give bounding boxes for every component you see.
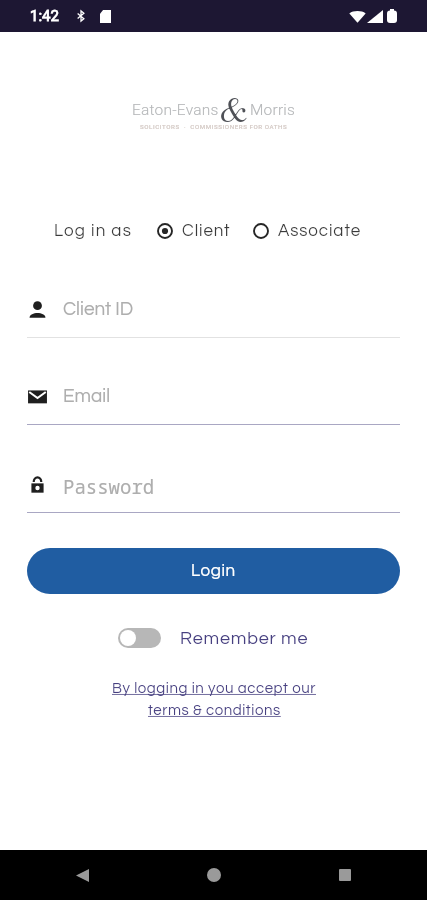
- button[interactable]: Recent apps: [323, 853, 367, 897]
- staticText: Client: [182, 222, 231, 240]
- staticText: Login: [191, 562, 236, 580]
- staticText: Client ID: [63, 299, 134, 319]
- staticText: Associate: [278, 222, 362, 240]
- staticText: &: [220, 90, 248, 131]
- staticText: Password: [63, 474, 155, 494]
- staticText: By logging in you accept our: [112, 681, 316, 696]
- button[interactable]: Login: [27, 548, 400, 594]
- button[interactable]: Associate: [253, 222, 362, 240]
- button[interactable]: Client: [157, 222, 231, 240]
- button[interactable]: Home: [192, 853, 236, 897]
- staticText: 1:42: [30, 7, 59, 25]
- staticText: Email: [63, 386, 111, 406]
- staticText: terms & conditions: [148, 703, 281, 718]
- staticText: Remember me: [180, 629, 309, 648]
- staticText: Morris: [250, 101, 296, 119]
- staticText: Eaton-Evans: [132, 101, 219, 119]
- button[interactable]: Remember me: [118, 624, 309, 652]
- staticText: Log in as: [54, 222, 133, 240]
- button[interactable]: By logging in you accept our: [112, 681, 316, 718]
- button[interactable]: Back: [60, 853, 104, 897]
- staticText: SOLICITORS · COMMISSIONERS FOR OATHS: [140, 123, 288, 130]
